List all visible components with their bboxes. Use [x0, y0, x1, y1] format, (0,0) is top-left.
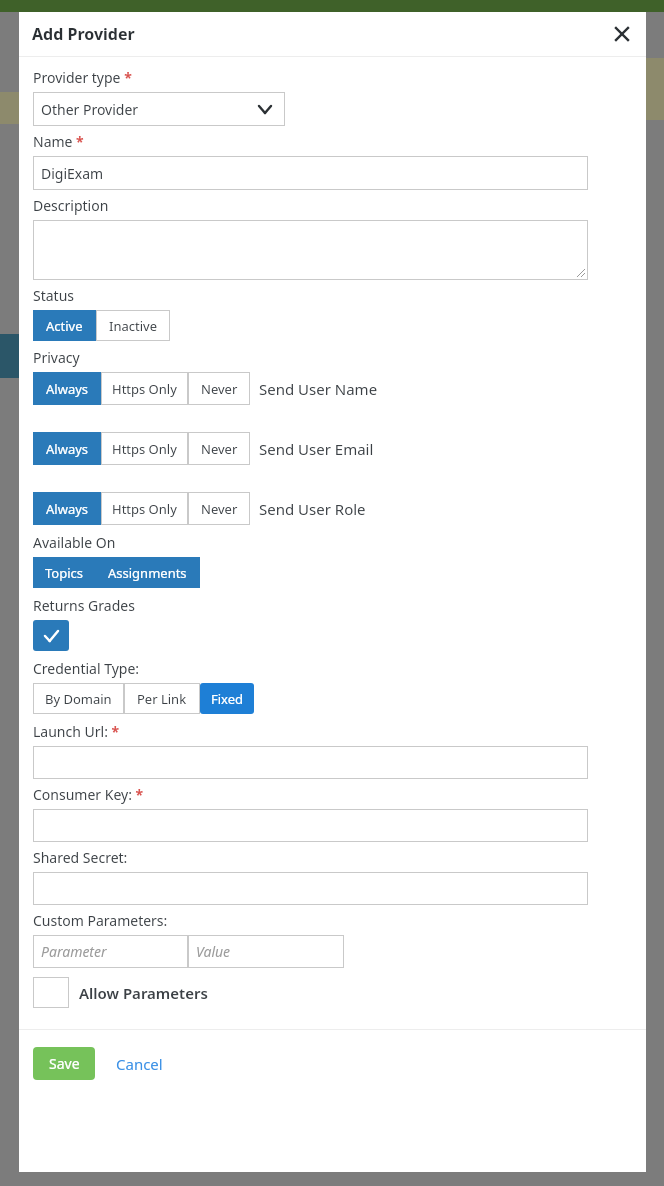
button[interactable]: Never — [188, 372, 250, 405]
staticText: Cancel — [116, 1054, 163, 1074]
staticText: Send User Role — [259, 499, 366, 519]
staticText: Consumer Key: * — [33, 785, 144, 804]
button[interactable] — [33, 746, 588, 779]
staticText: Https Only — [112, 380, 177, 398]
button[interactable]: Save — [33, 1047, 95, 1080]
staticText: Name * — [33, 132, 84, 151]
staticText: Per Link — [137, 690, 187, 708]
button[interactable]: Returns Grades — [33, 620, 69, 651]
staticText: Available On — [33, 533, 116, 552]
staticText: Credential Type: — [33, 659, 140, 678]
button[interactable]: Assignments — [95, 557, 200, 588]
staticText: Https Only — [112, 500, 177, 518]
button[interactable]: Topics — [33, 557, 95, 588]
staticText: Active — [46, 317, 83, 335]
button[interactable]: Value — [188, 935, 344, 968]
button[interactable]: Parameter — [33, 935, 188, 968]
staticText: Never — [201, 380, 238, 398]
staticText: Save — [49, 1054, 80, 1073]
button[interactable]: Always — [33, 492, 101, 525]
button[interactable] — [33, 872, 588, 905]
staticText: Returns Grades — [33, 596, 135, 615]
button[interactable]: Never — [188, 492, 250, 525]
button[interactable]: Other Provider — [33, 92, 285, 126]
button[interactable]: Never — [188, 432, 250, 465]
staticText: Always — [46, 440, 89, 458]
staticText: Provider type * — [33, 68, 132, 87]
staticText: Value — [196, 942, 231, 961]
staticText: Launch Url: * — [33, 722, 120, 741]
staticText: Description — [33, 196, 109, 215]
button[interactable]: Fixed — [200, 683, 254, 714]
staticText: Assignments — [108, 564, 187, 582]
staticText: Send User Email — [259, 439, 374, 459]
staticText: Add Provider — [32, 23, 135, 45]
button[interactable] — [33, 220, 588, 280]
staticText: Allow Parameters — [79, 983, 208, 1003]
staticText: Topics — [45, 564, 83, 582]
staticText: Always — [46, 380, 89, 398]
button[interactable]: DigiExam — [33, 156, 588, 190]
staticText: Inactive — [109, 317, 157, 335]
staticText: Shared Secret: — [33, 848, 128, 867]
button[interactable]: Always — [33, 372, 101, 405]
staticText: Send User Name — [259, 379, 378, 399]
staticText: Privacy — [33, 348, 80, 367]
button[interactable]: Https Only — [101, 372, 188, 405]
button[interactable]: Always — [33, 432, 101, 465]
staticText: Https Only — [112, 440, 177, 458]
staticText: Never — [201, 500, 238, 518]
staticText: Status — [33, 286, 75, 305]
button[interactable]: Allow Parameters — [33, 977, 69, 1008]
staticText: Never — [201, 440, 238, 458]
button[interactable]: Close — [608, 20, 636, 48]
button[interactable]: Active — [33, 310, 96, 341]
staticText: Parameter — [41, 942, 107, 961]
button[interactable]: Per Link — [124, 683, 200, 714]
staticText: Custom Parameters: — [33, 911, 168, 930]
button[interactable]: Https Only — [101, 492, 188, 525]
button[interactable]: Inactive — [96, 310, 170, 341]
button[interactable]: By Domain — [33, 683, 124, 714]
staticText: By Domain — [45, 690, 112, 708]
staticText: Always — [46, 500, 89, 518]
staticText: DigiExam — [41, 164, 104, 183]
staticText: Fixed — [211, 690, 244, 708]
button[interactable] — [33, 809, 588, 842]
staticText: Other Provider — [41, 100, 139, 119]
button[interactable]: Cancel — [112, 1050, 167, 1078]
button[interactable]: Https Only — [101, 432, 188, 465]
